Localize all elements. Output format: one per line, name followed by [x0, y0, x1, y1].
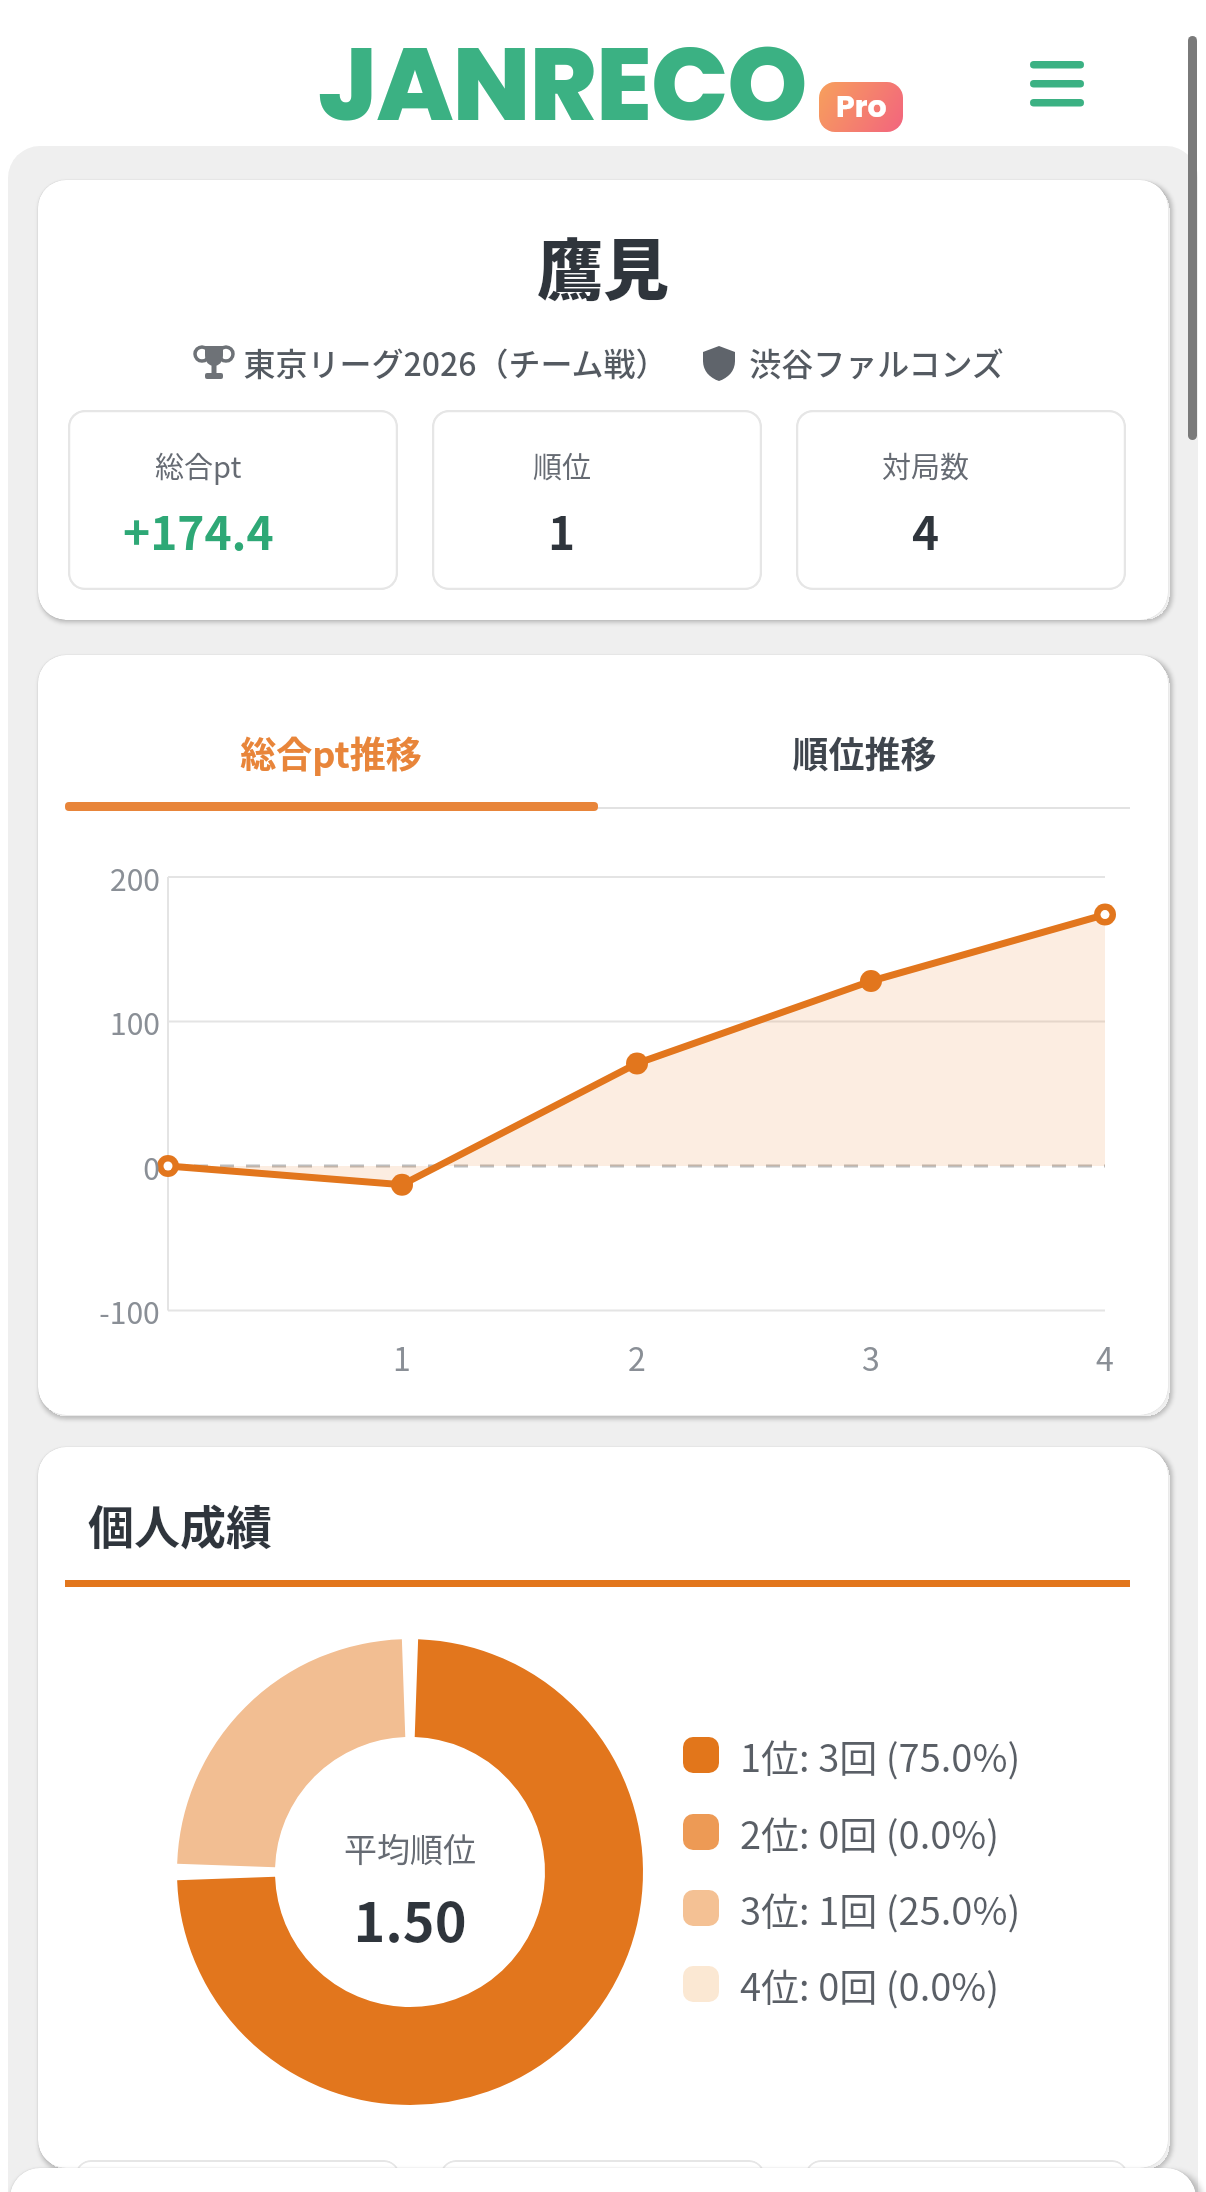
staticText: 2 — [628, 1334, 646, 1380]
staticText: +174.4 — [123, 497, 274, 564]
button[interactable] — [10, 2168, 1196, 2192]
staticText: 4位: 0回 (0.0%) — [740, 1957, 1000, 2012]
staticText: 総合pt推移 — [240, 726, 422, 778]
staticText: 東京リーグ2026（チーム戦） — [243, 339, 668, 385]
staticText: 鷹見 — [537, 217, 669, 313]
staticText: 1位: 3回 (75.0%) — [740, 1728, 1021, 1783]
staticText: 3位: 1回 (25.0%) — [740, 1881, 1021, 1936]
staticText: 個人成績 — [88, 1491, 272, 1558]
button[interactable] — [65, 690, 598, 810]
staticText: 渋谷ファルコンズ — [749, 339, 1004, 385]
staticText: JANRECO — [318, 13, 807, 156]
staticText: 1 — [393, 1334, 411, 1380]
button[interactable] — [598, 690, 1130, 810]
staticText: 1.50 — [353, 1879, 467, 1957]
button[interactable]: 順位 — [432, 410, 762, 590]
staticText: 総合pt — [155, 444, 242, 486]
staticText: 1 — [548, 497, 576, 564]
staticText: 対局数 — [882, 444, 970, 486]
staticText: 3 — [862, 1334, 880, 1380]
staticText: 200 — [110, 856, 160, 899]
staticText: 平均順位 — [344, 1824, 476, 1872]
button[interactable] — [1030, 61, 1084, 111]
staticText: Pro — [836, 86, 887, 128]
staticText: 4 — [1096, 1334, 1114, 1380]
staticText: -100 — [99, 1289, 160, 1332]
staticText: 100 — [110, 1000, 160, 1043]
staticText: 0 — [143, 1145, 160, 1188]
button[interactable]: JANRECO — [318, 13, 903, 156]
staticText: 4 — [912, 497, 940, 564]
button[interactable]: 総合pt — [68, 410, 398, 590]
staticText: 2位: 0回 (0.0%) — [740, 1805, 1000, 1860]
staticText: 順位推移 — [792, 726, 937, 778]
button[interactable]: 対局数 — [796, 410, 1126, 590]
staticText: 順位 — [533, 444, 592, 486]
